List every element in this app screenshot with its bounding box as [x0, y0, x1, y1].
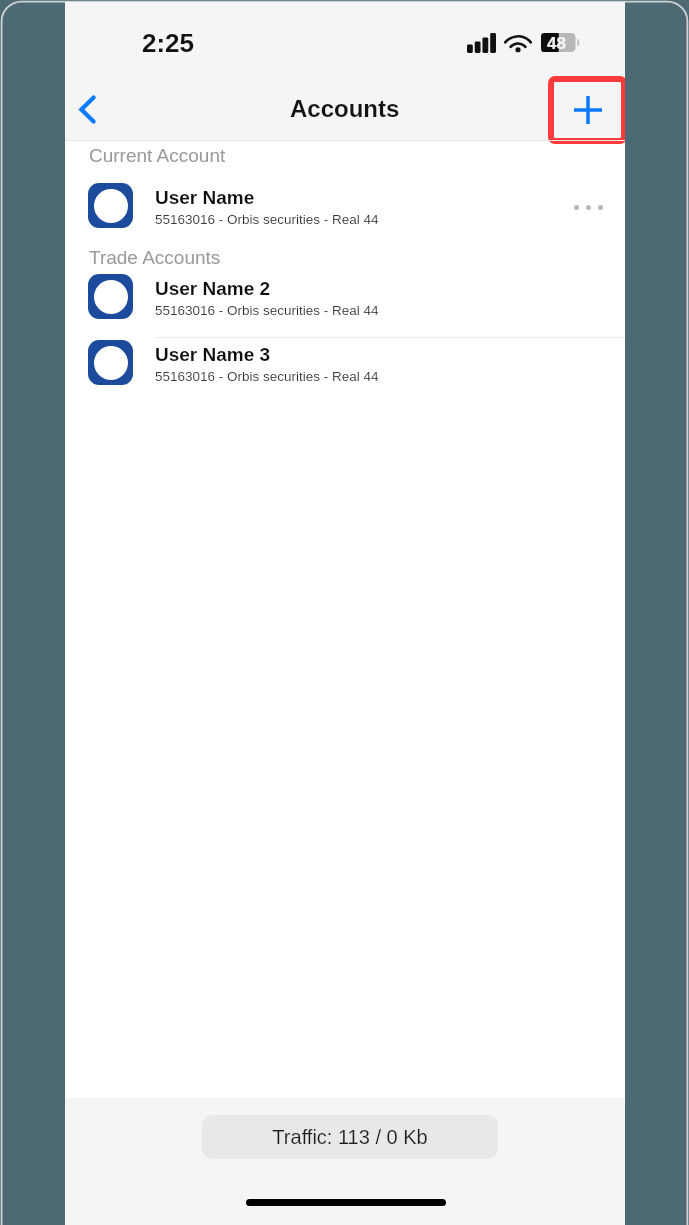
staticText: Current Account: [89, 145, 226, 166]
button[interactable]: User Name: [65, 172, 625, 238]
staticText: User Name 2: [155, 278, 271, 299]
staticText: 55163016 - Orbis securities - Real 44: [155, 303, 379, 318]
staticText: 55163016 - Orbis securities - Real 44: [155, 212, 379, 227]
button[interactable]: Traffic: 113 / 0 Kb: [202, 1115, 498, 1159]
button[interactable]: Back: [65, 80, 113, 138]
button[interactable]: User Name 2: [65, 263, 625, 329]
button[interactable]: More options: [562, 179, 614, 231]
staticText: User Name 3: [155, 344, 271, 365]
button[interactable]: User Name 3: [65, 329, 625, 395]
button[interactable]: Add account: [548, 76, 625, 144]
staticText: 55163016 - Orbis securities - Real 44: [155, 369, 379, 384]
staticText: User Name: [155, 187, 255, 208]
staticText: Accounts: [290, 95, 400, 122]
staticText: Traffic: 113 / 0 Kb: [272, 1126, 428, 1148]
staticText: 2:25: [142, 28, 195, 57]
staticText: 48: [547, 34, 566, 53]
staticText: Trade Accounts: [89, 247, 221, 268]
